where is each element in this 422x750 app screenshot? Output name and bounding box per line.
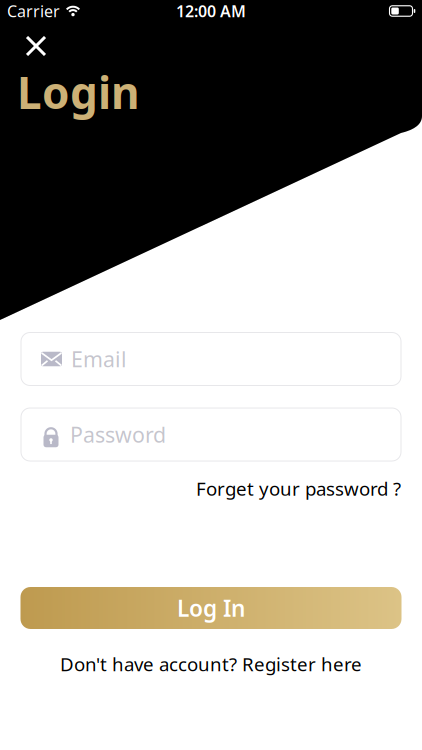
staticText: Forget your password ? <box>196 476 401 501</box>
staticText: Don't have account? Register here <box>60 652 362 676</box>
staticText: Log In <box>177 593 245 623</box>
staticText: Email <box>71 345 127 373</box>
button[interactable]: Log In <box>20 587 401 629</box>
button[interactable]: Close <box>18 28 54 64</box>
staticText: 12:00 AM <box>176 0 246 22</box>
button[interactable]: Password <box>21 408 401 461</box>
staticText: Carrier <box>7 0 60 22</box>
button[interactable]: Email <box>21 332 401 385</box>
button[interactable]: Don't have account? Register here <box>60 652 362 676</box>
button[interactable]: Forget your password ? <box>196 476 401 501</box>
staticText: Password <box>70 420 166 449</box>
staticText: Login <box>17 63 140 121</box>
